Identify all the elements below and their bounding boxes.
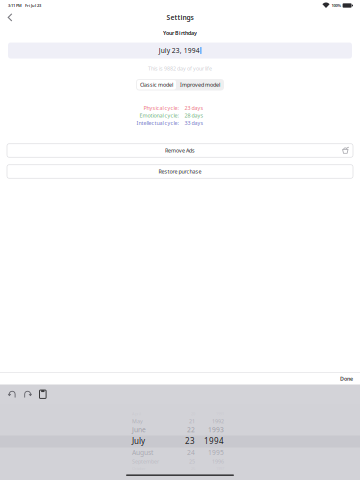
staticText: Classic model: [140, 81, 173, 88]
staticText: 22: [187, 425, 195, 434]
staticText: 1994: [204, 436, 224, 446]
staticText: 33 days: [184, 119, 203, 127]
staticText: Remove Ads: [165, 147, 195, 154]
staticText: Improved model: [180, 81, 220, 88]
button[interactable]: Paste: [35, 386, 50, 403]
staticText: 23 days: [184, 104, 203, 112]
staticText: Emotional cycle:: [139, 112, 178, 119]
staticText: July: [132, 436, 145, 446]
staticText: 25: [189, 458, 195, 465]
staticText: Settings: [166, 13, 193, 22]
button[interactable]: Back: [3, 10, 17, 25]
staticText: Intellectual cycle:: [136, 119, 178, 127]
button[interactable]: Undo: [4, 386, 20, 402]
button[interactable]: Classic model: [137, 80, 176, 89]
button[interactable]: Restore purchase: [7, 165, 353, 178]
staticText: Your Birthday: [163, 29, 197, 37]
staticText: Fri Jul 23: [22, 3, 41, 8]
staticText: 28 days: [184, 112, 203, 119]
staticText: 1993: [208, 425, 224, 434]
staticText: Restore purchase: [158, 168, 201, 175]
staticText: 21: [189, 418, 195, 425]
staticText: 1995: [208, 448, 224, 457]
staticText: 24: [187, 448, 195, 457]
staticText: 1992: [212, 418, 224, 425]
button[interactable]: Redo: [20, 386, 35, 402]
staticText: 1996: [212, 458, 224, 465]
staticText: September: [132, 458, 159, 465]
staticText: 100%: [330, 3, 343, 8]
staticText: This is 9882 day of your life: [148, 65, 212, 72]
staticText: 3:11 PM: [8, 3, 22, 8]
staticText: Physical cycle:: [143, 104, 178, 112]
staticText: 23: [185, 436, 195, 446]
staticText: May: [132, 418, 143, 425]
staticText: August: [132, 448, 153, 457]
button[interactable]: Done: [333, 372, 360, 385]
staticText: Done: [340, 375, 353, 382]
button[interactable]: Improved model: [177, 80, 223, 89]
button[interactable]: Remove Ads: [7, 144, 353, 157]
staticText: July 23, 1994: [159, 46, 200, 55]
staticText: June: [132, 425, 146, 434]
